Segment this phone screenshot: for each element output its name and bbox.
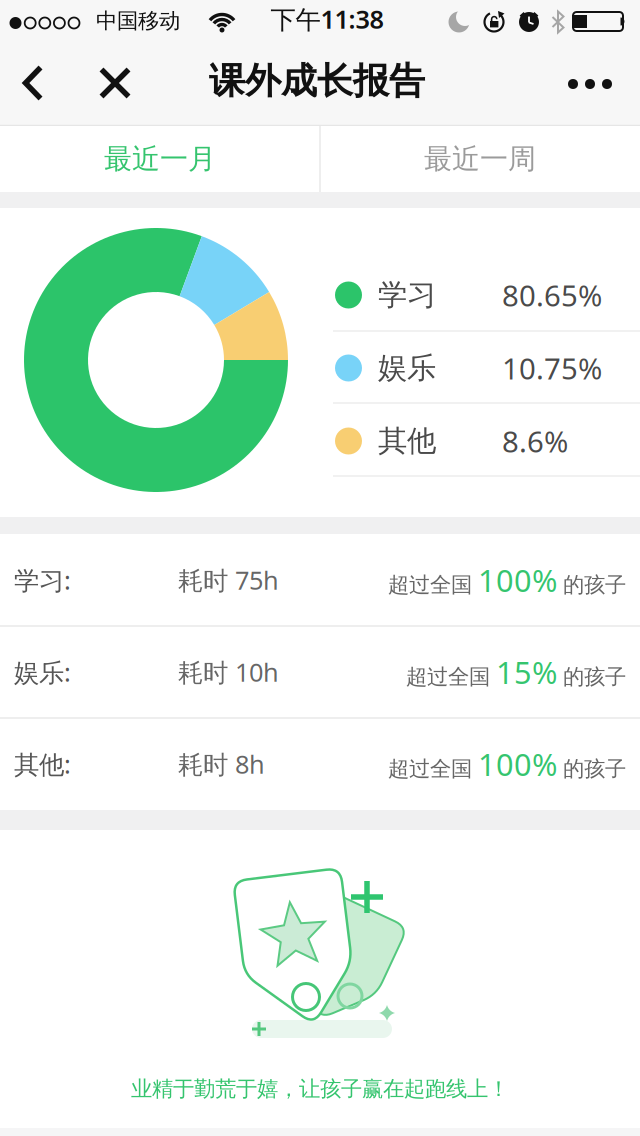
staticText: 娱乐 bbox=[378, 350, 436, 386]
staticText: 娱乐: bbox=[14, 655, 71, 689]
button[interactable]: Back bbox=[5, 43, 61, 123]
staticText: 80.65% bbox=[502, 275, 602, 314]
staticText: 学习: bbox=[14, 563, 71, 597]
staticText: 超过全国 bbox=[406, 664, 490, 690]
staticText: 10.75% bbox=[502, 348, 602, 387]
staticText: 的孩子 bbox=[563, 756, 626, 782]
staticText: 超过全国 bbox=[388, 756, 472, 782]
staticText: 的孩子 bbox=[563, 572, 626, 598]
staticText: 其他: bbox=[14, 747, 71, 781]
staticText: 超过全国 bbox=[388, 572, 472, 598]
staticText: 100% bbox=[478, 560, 557, 600]
button[interactable]: More bbox=[555, 44, 625, 124]
staticText: 耗时 75h bbox=[178, 563, 279, 597]
button[interactable]: 最近一周 bbox=[320, 126, 639, 192]
staticText: 课外成长报告 bbox=[209, 59, 425, 103]
staticText: 业精于勤荒于嬉，让孩子赢在起跑线上！ bbox=[131, 1076, 509, 1102]
staticText: 其他 bbox=[378, 423, 436, 459]
button[interactable]: 最近一月 bbox=[0, 126, 319, 192]
button[interactable]: Close bbox=[85, 43, 145, 123]
staticText: 下午11:38 bbox=[270, 2, 383, 36]
staticText: 15% bbox=[496, 652, 557, 692]
staticText: 最近一周 bbox=[424, 142, 536, 176]
staticText: 8.6% bbox=[502, 421, 568, 460]
staticText: 最近一月 bbox=[104, 142, 216, 176]
staticText: 耗时 10h bbox=[178, 655, 279, 689]
staticText: 的孩子 bbox=[563, 664, 626, 690]
staticText: 耗时 8h bbox=[178, 747, 265, 781]
staticText: 学习 bbox=[378, 277, 436, 313]
staticText: 100% bbox=[478, 744, 557, 784]
staticText: 中国移动 bbox=[96, 8, 180, 34]
